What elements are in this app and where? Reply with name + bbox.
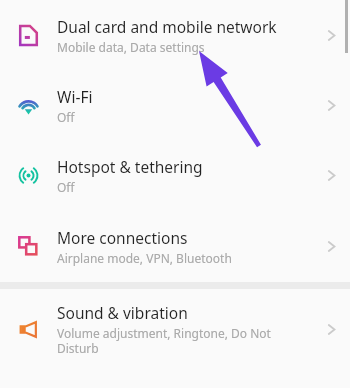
staticText: Mobile data, Data settings — [57, 39, 205, 55]
button[interactable]: More connections — [0, 210, 350, 282]
staticText: Off — [57, 109, 75, 125]
button[interactable]: Wi-Fi — [0, 70, 350, 140]
staticText: Airplane mode, VPN, Bluetooth — [57, 250, 232, 266]
staticText: Volume adjustment, Ringtone, Do Not Dist… — [57, 325, 271, 356]
staticText: Dual card and mobile network — [57, 16, 277, 37]
staticText: More connections — [57, 227, 188, 248]
button[interactable]: Hotspot & tethering — [0, 140, 350, 210]
button[interactable]: Sound & vibration — [0, 289, 350, 369]
staticText: Off — [57, 179, 75, 195]
staticText: Hotspot & tethering — [57, 156, 203, 177]
staticText: Wi-Fi — [57, 86, 93, 107]
button[interactable]: Dual card and mobile network — [0, 0, 350, 70]
staticText: Sound & vibration — [57, 302, 188, 323]
